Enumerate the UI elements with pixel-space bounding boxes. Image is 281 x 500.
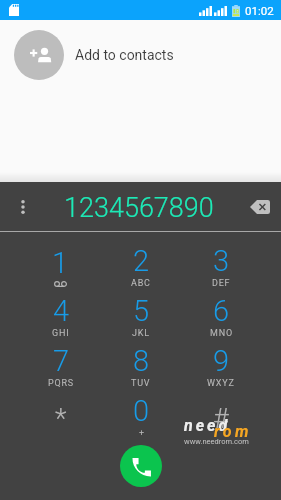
button[interactable]: 7: [20, 341, 101, 391]
staticText: +: [139, 428, 145, 439]
button[interactable]: 8: [101, 341, 181, 391]
staticText: MNO: [210, 328, 233, 339]
staticText: 1: [52, 246, 69, 280]
staticText: 2: [133, 244, 150, 278]
staticText: www.needrom.com: [184, 437, 249, 446]
staticText: WXYZ: [207, 378, 235, 389]
button[interactable]: 6: [181, 291, 261, 341]
button[interactable]: 2: [101, 241, 181, 291]
button[interactable]: 9: [181, 341, 261, 391]
staticText: need: [184, 416, 231, 435]
button[interactable]: 5: [101, 291, 181, 341]
staticText: 6: [213, 294, 230, 328]
staticText: 8: [133, 344, 150, 378]
button[interactable]: Backspace: [231, 182, 281, 232]
staticText: 0: [133, 394, 150, 428]
staticText: 4: [53, 294, 70, 328]
button[interactable]: 1: [20, 241, 101, 291]
staticText: Add to contacts: [75, 47, 174, 63]
button[interactable]: Add to contacts: [0, 20, 281, 90]
button[interactable]: *: [20, 391, 101, 441]
button[interactable]: 0: [101, 391, 181, 441]
staticText: rom: [214, 422, 252, 441]
staticText: 3: [213, 244, 230, 278]
button[interactable]: 3: [181, 241, 261, 291]
staticText: PQRS: [48, 378, 74, 389]
staticText: 1234567890: [64, 192, 214, 224]
staticText: 7: [53, 344, 70, 378]
button[interactable]: More options: [0, 182, 46, 232]
button[interactable]: Call: [120, 445, 162, 487]
staticText: 01:02: [245, 4, 274, 17]
staticText: ABC: [131, 278, 151, 289]
staticText: GHI: [52, 328, 70, 339]
staticText: DEF: [212, 278, 231, 289]
staticText: TUV: [131, 378, 151, 389]
staticText: JKL: [132, 328, 150, 339]
staticText: *: [55, 403, 67, 435]
button[interactable]: 4: [20, 291, 101, 341]
staticText: #: [213, 403, 229, 435]
staticText: 5: [133, 294, 150, 328]
button[interactable]: #: [181, 391, 261, 441]
staticText: 9: [213, 344, 230, 378]
